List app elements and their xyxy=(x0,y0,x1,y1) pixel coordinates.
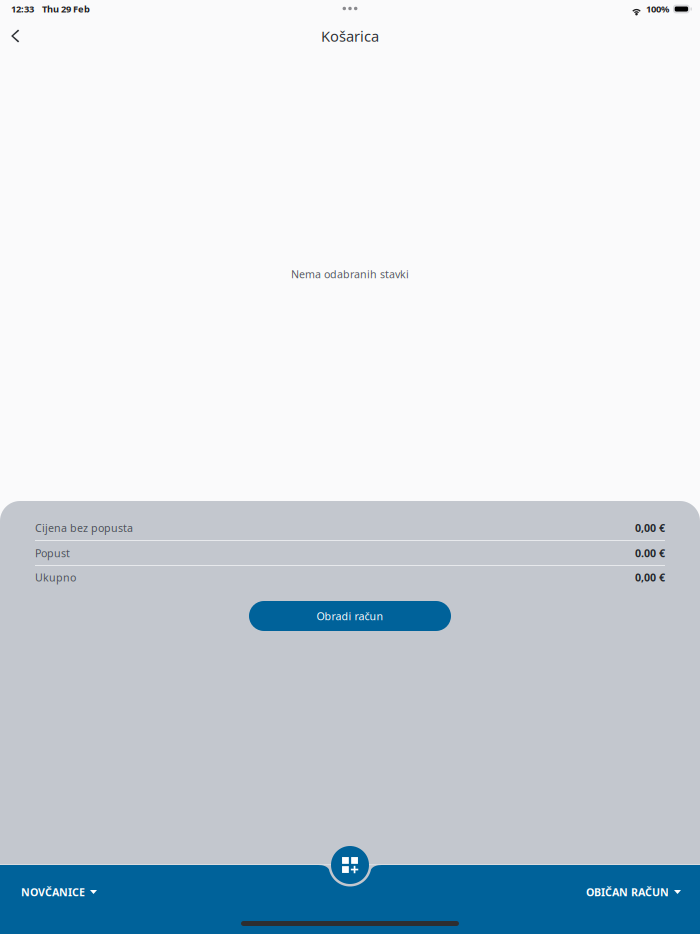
button[interactable]: Add item xyxy=(331,846,369,884)
staticText: OBIČAN RAČUN xyxy=(586,885,669,899)
staticText: 0,00 € xyxy=(635,521,665,535)
staticText: 100% xyxy=(646,3,669,15)
staticText: NOVČANICE xyxy=(21,885,85,899)
staticText: 0.00 € xyxy=(635,546,665,560)
staticText: Obradi račun xyxy=(316,609,383,623)
staticText: 0,00 € xyxy=(635,570,665,584)
staticText: Popust xyxy=(35,546,70,560)
button[interactable]: NOVČANICE xyxy=(11,873,107,911)
button[interactable]: Back xyxy=(4,18,36,54)
staticText: Košarica xyxy=(321,26,379,46)
staticText: Nema odabranih stavki xyxy=(291,267,409,281)
staticText: Cijena bez popusta xyxy=(35,521,133,535)
staticText: 12:33 xyxy=(11,3,34,15)
staticText: Ukupno xyxy=(35,570,76,584)
button[interactable]: Obradi račun xyxy=(249,601,451,631)
staticText: Thu 29 Feb xyxy=(42,3,90,15)
button[interactable]: OBIČAN RAČUN xyxy=(576,873,691,911)
